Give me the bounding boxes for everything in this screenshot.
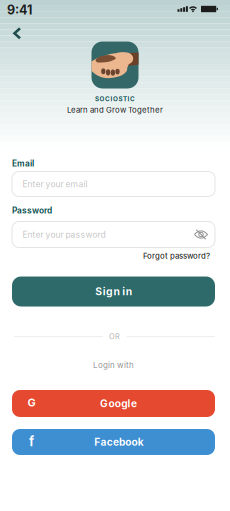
button[interactable]: f (12, 429, 215, 455)
staticText: OR (109, 332, 120, 341)
staticText: Email (12, 158, 34, 168)
staticText: Forgot password? (143, 251, 210, 261)
staticText: Google (100, 397, 137, 410)
staticText: Login with (93, 360, 134, 370)
button[interactable]: Back (9, 26, 25, 40)
staticText: G (27, 396, 35, 409)
staticText: 9:41 (7, 2, 32, 17)
button[interactable]: Enter your email (12, 171, 215, 196)
staticText: Enter your email (22, 179, 87, 189)
staticText: Password (12, 205, 52, 215)
staticText: Learn and Grow Together (67, 105, 163, 115)
button[interactable]: Show password (193, 229, 208, 240)
staticText: Facebook (94, 436, 144, 448)
staticText: Enter your password (22, 229, 105, 240)
staticText: f (29, 434, 34, 449)
button[interactable]: Enter your password (12, 221, 215, 247)
staticText: SOCIOSTIC (95, 95, 135, 103)
button[interactable]: Sign in (12, 276, 215, 306)
staticText: Sign in (95, 285, 132, 298)
button[interactable]: Forgot password? (143, 251, 210, 261)
button[interactable]: G (12, 390, 215, 417)
